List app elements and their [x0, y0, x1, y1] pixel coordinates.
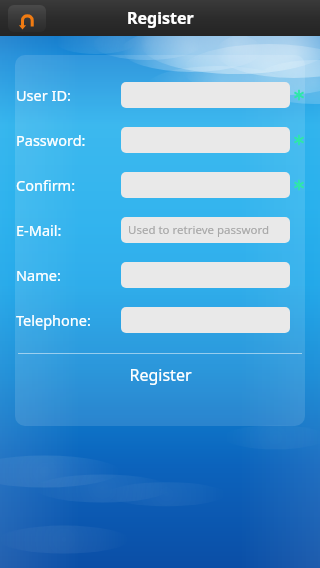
staticText: Name:: [16, 265, 61, 285]
staticText: Password:: [16, 130, 86, 150]
staticText: E-Mail:: [16, 220, 62, 240]
button[interactable]: Register: [15, 354, 305, 395]
button[interactable]: Name:: [15, 252, 305, 297]
button[interactable]: Back: [8, 5, 46, 32]
button[interactable]: Confirm:: [15, 162, 305, 207]
button[interactable]: E-Mail:: [15, 207, 305, 252]
staticText: Register: [129, 364, 192, 386]
staticText: Confirm:: [16, 175, 76, 195]
staticText: Used to retrieve password: [128, 222, 270, 238]
button[interactable]: User ID:: [15, 72, 305, 117]
staticText: Register: [127, 7, 194, 29]
staticText: Telephone:: [16, 310, 91, 330]
button[interactable]: Telephone:: [15, 297, 305, 342]
staticText: User ID:: [16, 85, 71, 105]
button[interactable]: Password:: [15, 117, 305, 162]
